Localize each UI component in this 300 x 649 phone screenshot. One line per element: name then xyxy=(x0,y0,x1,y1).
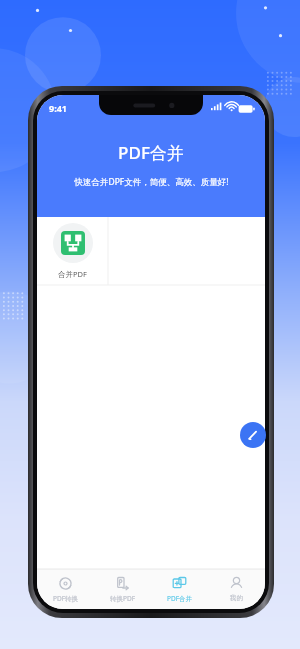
staticText: 我的 xyxy=(230,594,243,602)
button[interactable]: Edit xyxy=(240,422,266,448)
staticText: 合并PDF xyxy=(58,269,87,279)
button[interactable]: 合并PDF xyxy=(37,217,108,285)
button[interactable]: 转换PDF xyxy=(94,569,151,609)
staticText: 转换PDF xyxy=(110,594,136,603)
button[interactable]: PDF转换 xyxy=(37,569,94,609)
staticText: PDF合并 xyxy=(167,594,193,603)
staticText: PDF合并 xyxy=(118,141,184,164)
staticText: 9:41 xyxy=(49,102,67,114)
staticText: PDF转换 xyxy=(53,594,79,603)
button[interactable]: 我的 xyxy=(208,569,265,609)
button[interactable]: PDF合并 xyxy=(151,569,208,609)
staticText: 快速合并DPF文件，简便、高效、质量好! xyxy=(74,176,229,188)
